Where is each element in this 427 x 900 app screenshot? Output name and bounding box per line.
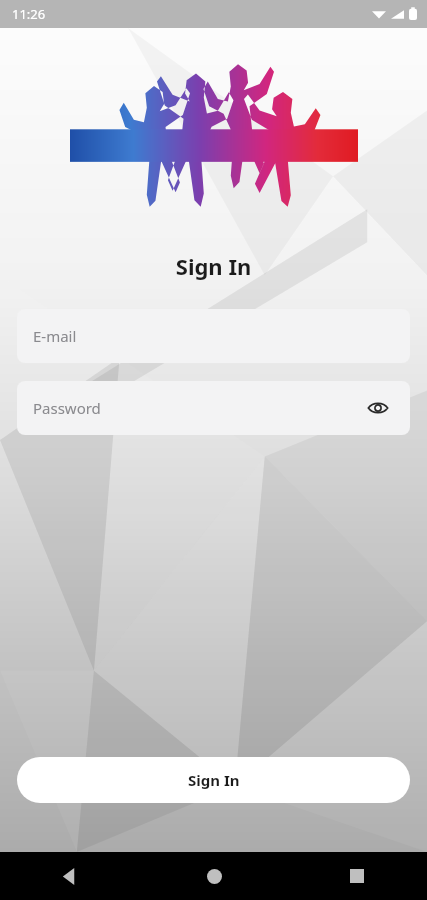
- button[interactable]: E-mail: [17, 309, 410, 363]
- staticText: Sign In: [0, 251, 427, 281]
- button[interactable]: Back: [52, 858, 88, 894]
- button[interactable]: Show password: [364, 394, 392, 422]
- staticText: E-mail: [33, 326, 77, 346]
- button[interactable]: Recent apps: [339, 858, 375, 894]
- staticText: 11:26: [12, 5, 46, 23]
- staticText: Sign In: [188, 770, 240, 790]
- staticText: Password: [33, 398, 101, 418]
- button[interactable]: Sign In: [17, 757, 410, 803]
- button[interactable]: Password: [17, 381, 410, 435]
- button[interactable]: Home: [196, 858, 232, 894]
